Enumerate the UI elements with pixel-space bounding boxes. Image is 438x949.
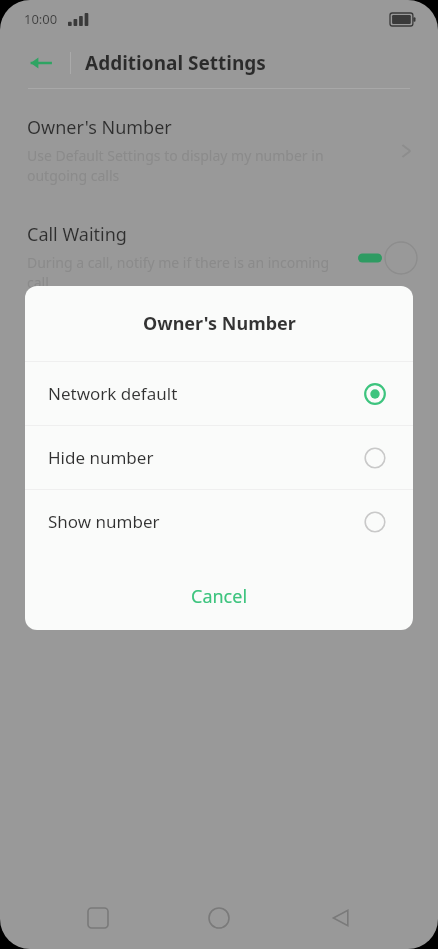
staticText: Use Default Settings to display my numbe… (27, 146, 382, 186)
button[interactable]: Home (195, 894, 243, 942)
staticText: Additional Settings (85, 50, 266, 76)
staticText: Cancel (191, 584, 248, 609)
staticText: Hide number (48, 446, 364, 469)
staticText: Network default (48, 382, 364, 405)
button[interactable]: Cancel (25, 553, 413, 630)
staticText: During a call, notify me if there is an … (27, 253, 350, 293)
button[interactable]: Back (317, 894, 365, 942)
staticText: Show number (48, 510, 364, 533)
button[interactable]: Call waiting toggle (358, 241, 418, 275)
button[interactable]: Back (24, 46, 58, 80)
button[interactable]: Call Waiting (0, 214, 438, 301)
staticText: Owner's Number (143, 311, 296, 336)
button[interactable]: Recent apps (74, 894, 122, 942)
button[interactable]: Network default (25, 362, 413, 425)
staticText: 10:00 (24, 10, 58, 28)
staticText: Owner's Number (27, 115, 172, 140)
staticText: Call Waiting (27, 222, 127, 247)
button[interactable]: Owner's Number (0, 107, 438, 194)
button[interactable]: Hide number (25, 426, 413, 489)
button[interactable]: Show number (25, 490, 413, 553)
